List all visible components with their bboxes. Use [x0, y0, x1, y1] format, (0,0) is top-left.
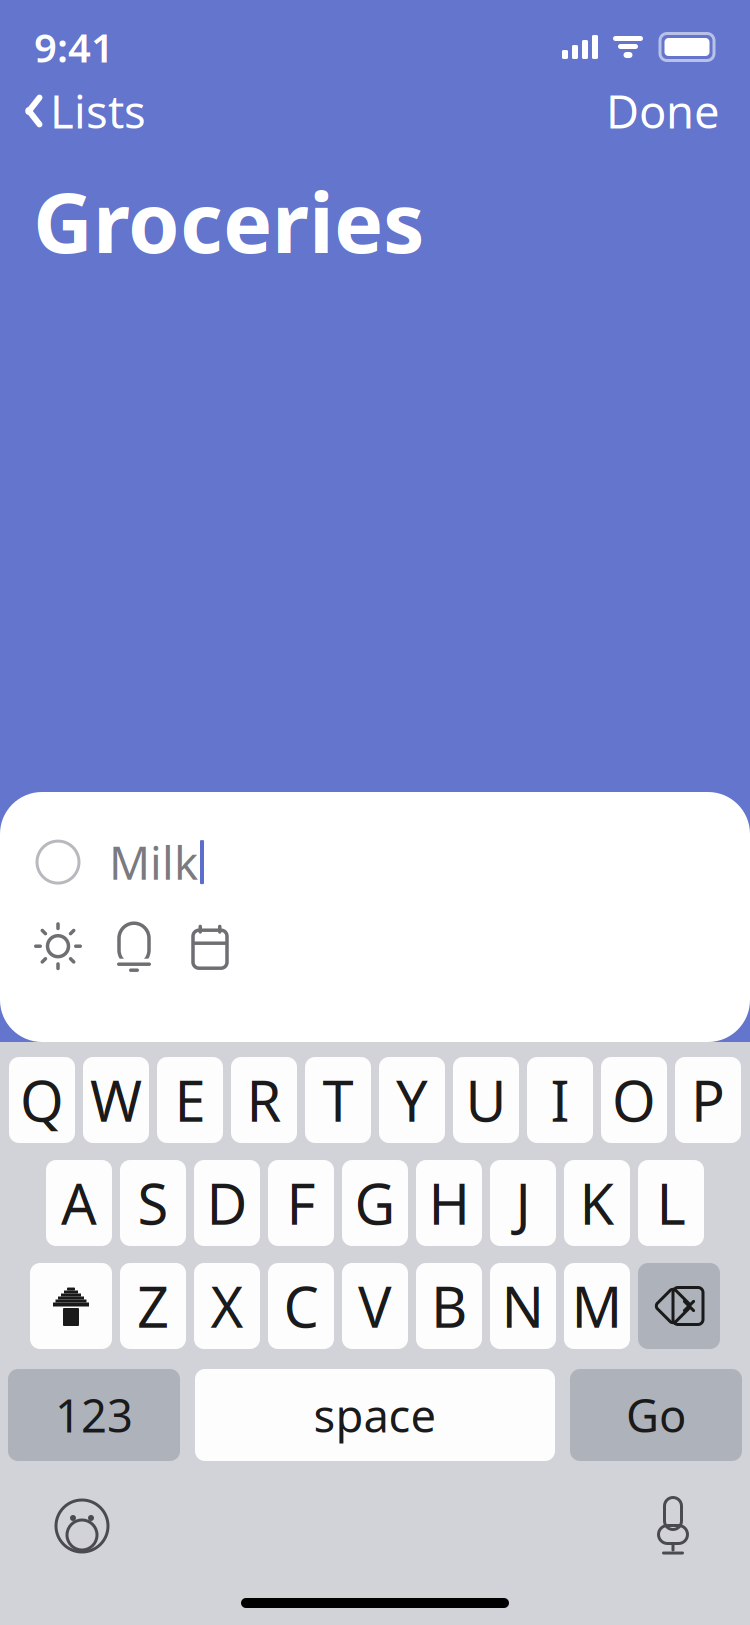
button[interactable]: E	[157, 1057, 223, 1143]
button[interactable]: M	[564, 1263, 630, 1349]
button[interactable]: Lists	[0, 73, 146, 149]
button[interactable]: Z	[120, 1263, 186, 1349]
staticText: 9:41	[34, 20, 114, 73]
button[interactable]: C	[268, 1263, 334, 1349]
button[interactable]: X	[194, 1263, 260, 1349]
staticText: Y	[396, 1063, 428, 1137]
staticText: X	[210, 1269, 243, 1343]
button[interactable]: 123	[8, 1369, 180, 1461]
button[interactable]: Emoji	[42, 1486, 122, 1566]
staticText: L	[656, 1166, 685, 1240]
staticText: N	[501, 1269, 544, 1343]
staticText: I	[550, 1063, 569, 1137]
button[interactable]: S	[120, 1160, 186, 1246]
button[interactable]: R	[231, 1057, 297, 1143]
button[interactable]: Dictate	[638, 1483, 708, 1569]
button[interactable]: N	[490, 1263, 556, 1349]
staticText: space	[313, 1385, 436, 1445]
staticText: U	[465, 1063, 506, 1137]
staticText: B	[431, 1269, 467, 1343]
staticText: D	[206, 1166, 247, 1240]
staticText: Go	[626, 1385, 686, 1445]
staticText: Q	[20, 1063, 64, 1137]
button[interactable]: Delete	[638, 1263, 720, 1349]
staticText: Done	[606, 81, 720, 141]
button[interactable]: H	[416, 1160, 482, 1246]
button[interactable]: V	[342, 1263, 408, 1349]
staticText: S	[137, 1166, 168, 1240]
button[interactable]: F	[268, 1160, 334, 1246]
button[interactable]: Go	[570, 1369, 742, 1461]
staticText: 123	[55, 1385, 133, 1445]
staticText: T	[322, 1063, 353, 1137]
staticText: A	[61, 1166, 97, 1240]
staticText: H	[428, 1166, 469, 1240]
button[interactable]: Mark complete	[29, 833, 87, 891]
staticText: Z	[137, 1269, 169, 1343]
staticText: V	[358, 1269, 392, 1343]
button[interactable]: P	[675, 1057, 741, 1143]
staticText: P	[691, 1063, 725, 1137]
button[interactable]: Add date	[186, 922, 234, 970]
button[interactable]: Shift	[30, 1263, 112, 1349]
button[interactable]: Q	[9, 1057, 75, 1143]
button[interactable]: Flag	[34, 922, 82, 970]
staticText: W	[90, 1063, 142, 1137]
staticText: Milk	[109, 832, 198, 892]
staticText: Lists	[50, 81, 146, 141]
button[interactable]: W	[83, 1057, 149, 1143]
staticText: E	[174, 1063, 205, 1137]
staticText: Groceries	[33, 166, 424, 276]
staticText: C	[283, 1269, 318, 1343]
staticText: R	[246, 1063, 281, 1137]
button[interactable]: D	[194, 1160, 260, 1246]
button[interactable]: T	[305, 1057, 371, 1143]
button[interactable]: space	[195, 1369, 555, 1461]
button[interactable]: B	[416, 1263, 482, 1349]
staticText: F	[286, 1166, 315, 1240]
button[interactable]: J	[490, 1160, 556, 1246]
button[interactable]: U	[453, 1057, 519, 1143]
staticText: K	[579, 1166, 614, 1240]
button[interactable]: I	[527, 1057, 593, 1143]
button[interactable]: G	[342, 1160, 408, 1246]
button[interactable]: Y	[379, 1057, 445, 1143]
staticText: M	[571, 1269, 622, 1343]
button[interactable]: A	[46, 1160, 112, 1246]
button[interactable]: K	[564, 1160, 630, 1246]
staticText: G	[354, 1166, 395, 1240]
staticText: O	[612, 1063, 656, 1137]
button[interactable]: Remind me	[110, 922, 158, 970]
button[interactable]: L	[638, 1160, 704, 1246]
staticText: J	[515, 1166, 530, 1240]
button[interactable]: Done	[606, 73, 750, 149]
button[interactable]: O	[601, 1057, 667, 1143]
